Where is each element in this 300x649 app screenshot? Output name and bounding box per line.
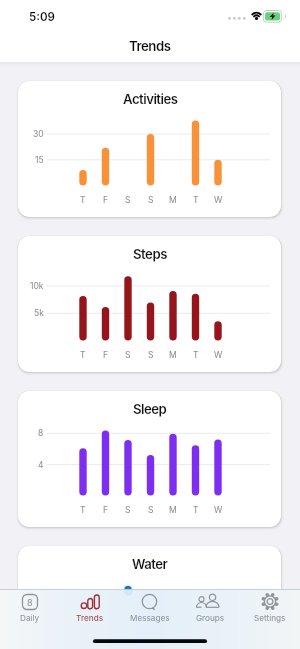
staticText: 5k [34, 308, 44, 318]
staticText: M [169, 350, 177, 360]
staticText: T [80, 195, 86, 205]
button[interactable]: Groups [180, 589, 240, 627]
staticText: T [80, 350, 86, 360]
staticText: Messages [130, 613, 170, 623]
staticText: M [169, 195, 177, 205]
staticText: S [148, 195, 154, 205]
staticText: M [169, 505, 177, 515]
staticText: 5:09 [29, 10, 55, 24]
staticText: 30 [33, 129, 44, 139]
staticText: Steps [133, 246, 167, 262]
staticText: Trends [129, 38, 171, 54]
staticText: W [214, 505, 223, 515]
staticText: Settings [254, 613, 286, 623]
staticText: W [214, 195, 223, 205]
staticText: S [125, 505, 131, 515]
staticText: 8 [38, 428, 44, 438]
staticText: Water [132, 556, 168, 572]
staticText: F [103, 505, 109, 515]
staticText: Daily [20, 613, 40, 623]
staticText: 10k [30, 281, 44, 291]
staticText: Sleep [133, 401, 167, 417]
staticText: S [125, 195, 131, 205]
staticText: S [148, 350, 154, 360]
staticText: S [125, 350, 131, 360]
staticText: T [80, 505, 86, 515]
staticText: 4 [38, 460, 44, 470]
staticText: Groups [196, 613, 225, 623]
button[interactable]: Settings [240, 589, 300, 627]
staticText: F [103, 350, 109, 360]
button[interactable]: Sleep [18, 391, 281, 527]
staticText: T [193, 505, 199, 515]
staticText: T [193, 350, 199, 360]
button[interactable]: Trends [60, 589, 120, 627]
button[interactable]: 8 [0, 589, 60, 627]
staticText: 15 [35, 155, 44, 165]
staticText: F [103, 195, 109, 205]
staticText: Trends [76, 613, 104, 623]
staticText: Activities [123, 91, 178, 107]
button[interactable]: Activities [18, 81, 281, 217]
staticText: W [214, 350, 223, 360]
button[interactable]: Water [18, 546, 281, 649]
button[interactable]: Messages [120, 589, 180, 627]
staticText: S [148, 505, 154, 515]
button[interactable]: Steps [18, 236, 281, 372]
staticText: T [193, 195, 199, 205]
staticText: 8 [27, 597, 33, 608]
